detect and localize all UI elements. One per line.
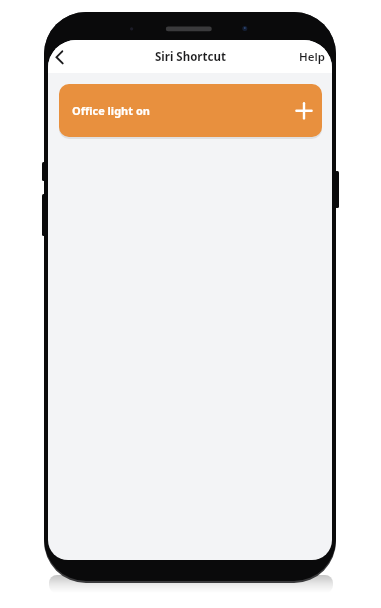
button[interactable]: Office light on	[59, 84, 322, 137]
button[interactable]	[48, 40, 74, 73]
staticText: Help	[299, 49, 325, 65]
staticText: Office light on	[72, 103, 150, 118]
staticText: Siri Shortcut	[155, 49, 226, 65]
button[interactable]: Help	[299, 49, 325, 65]
